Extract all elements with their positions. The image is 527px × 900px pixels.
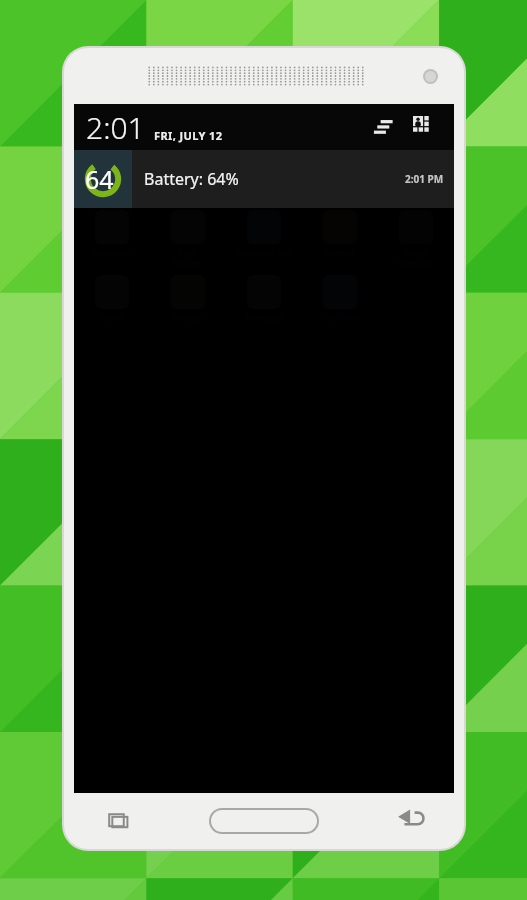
staticText: FRI, JULY 12 [154,128,223,143]
button[interactable]: Back [384,794,438,848]
staticText: Battery: 64% [144,168,405,190]
button[interactable]: 64 [74,150,454,208]
staticText: 2:01 [86,107,145,148]
button[interactable]: Home [209,804,319,838]
button[interactable]: Quick settings [404,107,444,147]
button[interactable]: Settings [364,107,404,147]
staticText: 64 [85,162,114,196]
button[interactable]: Recent apps [90,794,144,848]
staticText: 2:01 PM [405,172,444,186]
